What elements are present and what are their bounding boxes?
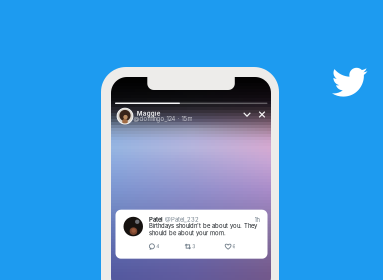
staticText: @domingo_124 · 15m [133,115,192,122]
staticText: should be about your mom. [149,229,226,237]
staticText: Maggie [137,110,161,117]
button[interactable]: 4 [149,242,185,250]
staticText: 6 [232,243,235,249]
staticText: Patel [149,216,163,223]
staticText: 4 [156,243,159,249]
button[interactable]: 3 [185,242,225,250]
staticText: Birthdays shouldn't be about you. They [149,222,257,229]
button[interactable]: 6 [225,242,262,250]
button[interactable]: Close [255,108,268,121]
staticText: 1h [254,216,259,223]
staticText: 3 [192,243,195,249]
staticText: @Patel_232 [165,216,199,223]
button[interactable]: More options [240,108,253,121]
